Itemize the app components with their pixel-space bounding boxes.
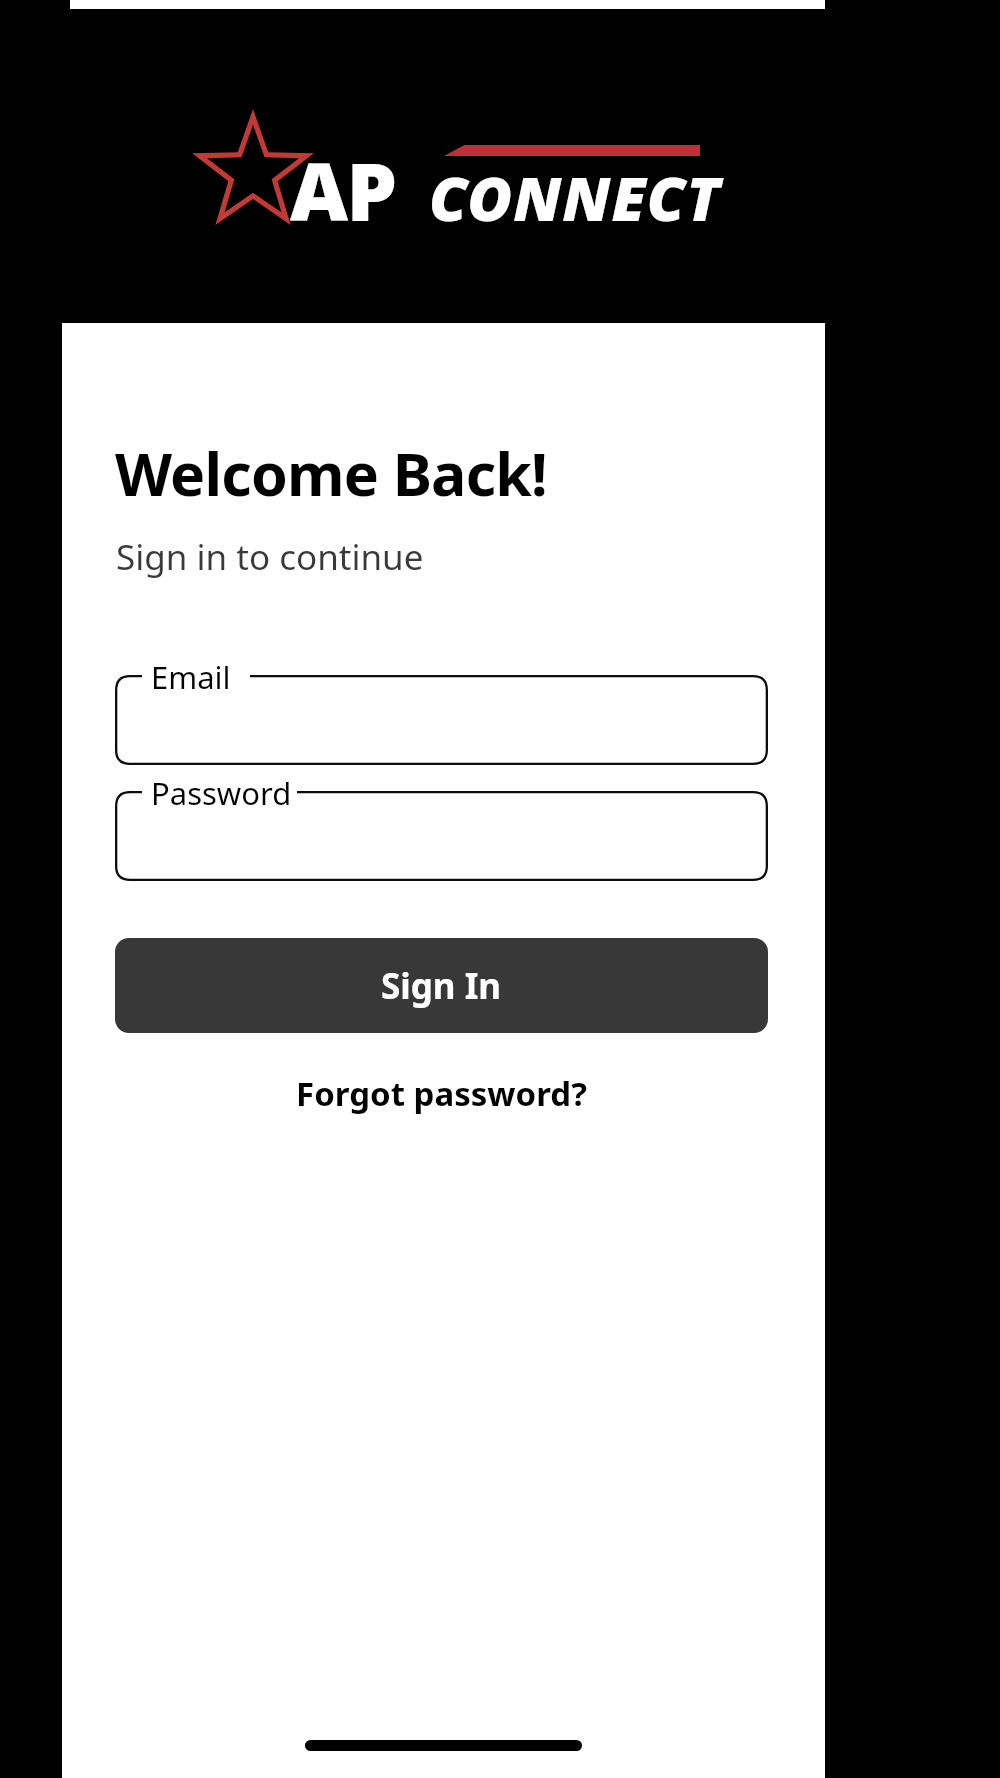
staticText: Password	[151, 772, 292, 814]
staticText: CONNECT	[429, 156, 721, 239]
other: Home indicator	[305, 1740, 582, 1751]
button[interactable]: Forgot password?	[115, 1061, 768, 1125]
button[interactable]: Password	[115, 791, 768, 881]
button[interactable]: Email	[115, 675, 768, 765]
staticText: Email	[151, 656, 231, 698]
staticText: Forgot password?	[296, 1071, 587, 1116]
staticText: Welcome Back!	[115, 433, 547, 513]
staticText: AP	[290, 135, 396, 244]
button[interactable]: Sign In	[115, 938, 768, 1033]
staticText: Sign In	[381, 962, 502, 1010]
staticText: Sign in to continue	[116, 533, 424, 581]
